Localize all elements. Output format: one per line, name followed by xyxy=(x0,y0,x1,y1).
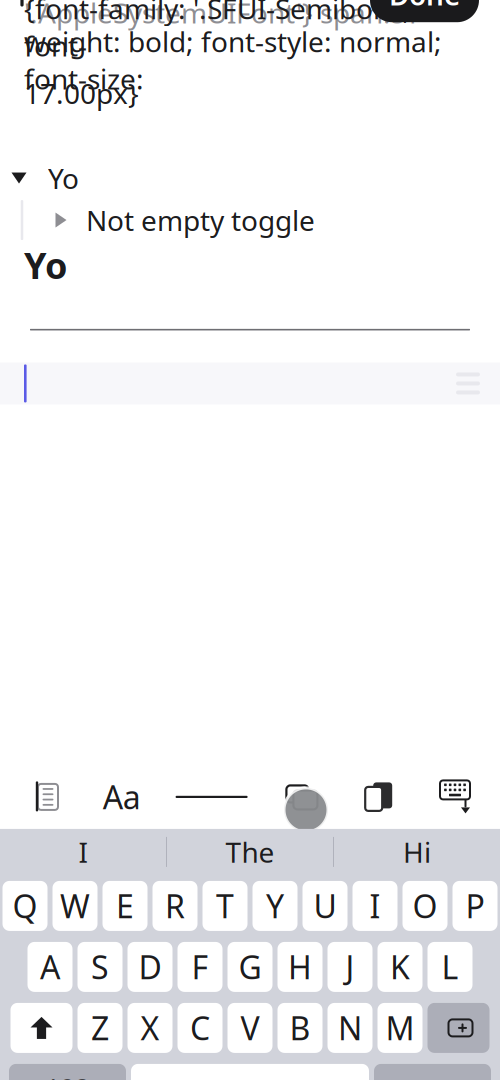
staticText: Yo xyxy=(48,159,79,197)
button[interactable]: The xyxy=(167,829,333,875)
staticText: E xyxy=(116,885,134,927)
button[interactable]: I xyxy=(352,881,397,931)
button[interactable]: C xyxy=(177,1003,222,1053)
button[interactable]: X xyxy=(127,1003,172,1053)
button[interactable]: N xyxy=(327,1003,372,1053)
button[interactable]: Markup xyxy=(18,773,72,821)
button[interactable]: K xyxy=(377,942,422,992)
staticText: font: 17.0px '.AppleSystemUIFont'} span.… xyxy=(24,0,420,31)
staticText: Aa xyxy=(103,776,141,818)
button[interactable]: S xyxy=(77,942,122,992)
button[interactable]: return xyxy=(374,1064,491,1080)
staticText: P xyxy=(465,885,484,927)
staticText: C xyxy=(190,1007,210,1049)
staticText: Hi xyxy=(403,833,431,870)
button[interactable]: Z xyxy=(77,1003,122,1053)
button[interactable]: Scan document xyxy=(351,773,405,821)
staticText: T xyxy=(216,885,234,927)
button[interactable]: Hide keyboard xyxy=(428,773,482,821)
staticText: Y xyxy=(266,885,284,927)
staticText: Yo xyxy=(24,241,68,289)
button[interactable]: U xyxy=(302,881,347,931)
button[interactable]: L xyxy=(427,942,472,992)
staticText: Z xyxy=(91,1007,109,1049)
button[interactable]: F xyxy=(177,942,222,992)
staticText: F xyxy=(191,946,208,988)
button[interactable]: Done xyxy=(370,0,479,22)
staticText: K xyxy=(390,946,410,988)
button[interactable]: A xyxy=(27,942,72,992)
button[interactable]: Q xyxy=(2,881,47,931)
button[interactable]: J xyxy=(327,942,372,992)
button[interactable]: space xyxy=(131,1064,369,1080)
staticText: V xyxy=(240,1007,259,1049)
button[interactable]: H xyxy=(277,942,322,992)
staticText: J xyxy=(345,946,354,988)
staticText: M xyxy=(385,1007,414,1049)
button[interactable]: T xyxy=(202,881,247,931)
staticText: R xyxy=(165,885,185,927)
staticText: Q xyxy=(12,885,37,927)
staticText: B xyxy=(289,1007,310,1049)
button[interactable]: W xyxy=(52,881,97,931)
button[interactable]: Not empty toggle xyxy=(44,199,500,241)
staticText: H xyxy=(288,946,312,988)
staticText: Not empty toggle xyxy=(86,201,315,239)
button[interactable]: I xyxy=(0,829,166,875)
button[interactable]: E xyxy=(102,881,147,931)
staticText: weight: bold; font-style: normal; font-s… xyxy=(24,23,442,97)
button[interactable]: R xyxy=(152,881,197,931)
staticText: The xyxy=(225,833,274,870)
staticText: U xyxy=(313,885,336,927)
button[interactable]: O xyxy=(402,881,447,931)
button[interactable]: P xyxy=(452,881,497,931)
staticText: {font-family: '.SFUI-Semibold'; font- xyxy=(24,0,411,64)
button[interactable]: Back xyxy=(0,0,44,13)
button[interactable]: Insert line xyxy=(172,773,252,821)
staticText: A xyxy=(40,946,60,988)
staticText: O xyxy=(412,885,437,927)
button[interactable]: V xyxy=(227,1003,272,1053)
staticText: Done xyxy=(389,0,460,13)
staticText: I xyxy=(78,833,87,870)
staticText: N xyxy=(338,1007,362,1049)
button[interactable]: B xyxy=(277,1003,322,1053)
staticText: 17.00px} xyxy=(24,74,139,112)
button[interactable]: M xyxy=(377,1003,422,1053)
staticText: D xyxy=(138,946,161,988)
button[interactable]: Y xyxy=(252,881,297,931)
button[interactable]: Hi xyxy=(334,829,500,875)
button[interactable]: Shift xyxy=(10,1003,72,1053)
button[interactable]: G xyxy=(227,942,272,992)
staticText: S xyxy=(91,946,109,988)
staticText: G xyxy=(238,946,261,988)
staticText: I xyxy=(369,885,380,927)
staticText: 123 xyxy=(45,1071,90,1080)
button[interactable]: Delete xyxy=(427,1003,489,1053)
staticText: L xyxy=(441,946,458,988)
button[interactable]: Aa xyxy=(95,773,149,821)
button[interactable]: D xyxy=(127,942,172,992)
staticText: X xyxy=(140,1007,159,1049)
button[interactable]: Yo xyxy=(0,157,500,199)
staticText: W xyxy=(60,885,90,927)
button[interactable]: 123 xyxy=(9,1064,126,1080)
button[interactable]: Insert photo xyxy=(274,773,328,821)
